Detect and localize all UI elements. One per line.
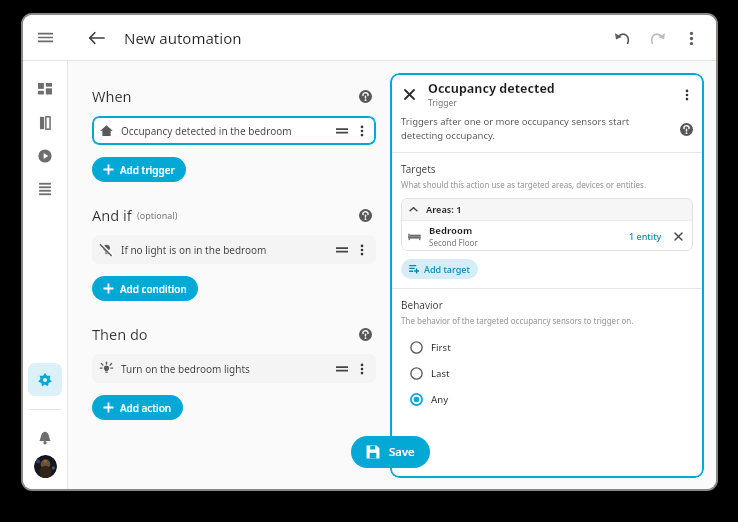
button[interactable]: Redo — [640, 21, 674, 55]
staticText: And if — [92, 205, 132, 225]
staticText: Behavior — [401, 298, 443, 312]
staticText: Trigger — [428, 97, 457, 109]
button[interactable]: Areas: 1 — [401, 198, 693, 220]
staticText: When — [92, 86, 132, 106]
button[interactable]: Save — [351, 436, 430, 468]
staticText: Bedroom — [429, 224, 473, 237]
button[interactable]: Add action — [92, 395, 183, 420]
button[interactable]: Trigger options — [674, 82, 699, 107]
button[interactable]: Back — [81, 23, 111, 53]
staticText: Add action — [120, 401, 172, 415]
button[interactable]: Overview — [28, 73, 62, 106]
staticText: Triggers after one or more occupancy sen… — [401, 115, 653, 142]
button[interactable]: Settings — [28, 363, 62, 396]
button[interactable]: Map — [28, 106, 62, 139]
staticText: Add target — [424, 263, 470, 275]
staticText: Areas: 1 — [426, 203, 462, 215]
staticText: Last — [431, 367, 450, 380]
staticText: New automation — [124, 28, 242, 48]
button[interactable]: Help about Then do — [354, 323, 376, 345]
button[interactable]: Row options — [352, 121, 372, 141]
staticText: Save — [389, 444, 415, 460]
button[interactable]: Undo — [606, 21, 640, 55]
button[interactable]: Add target — [401, 259, 478, 279]
button[interactable]: User profile — [34, 455, 57, 478]
button[interactable]: Turn on the bedroom lights — [92, 354, 376, 383]
staticText: What should this action use as targeted … — [401, 179, 647, 190]
staticText: Add condition — [120, 282, 187, 296]
staticText: Occupancy detected in the bedroom — [121, 124, 292, 138]
button[interactable]: Row options — [352, 359, 372, 379]
staticText: Add trigger — [120, 163, 175, 177]
button[interactable]: Close — [397, 82, 422, 107]
staticText: Second Floor — [429, 237, 478, 248]
button[interactable]: Menu — [23, 15, 67, 60]
button[interactable]: Any — [401, 386, 704, 412]
staticText: Any — [431, 393, 449, 406]
button[interactable]: Row options — [352, 240, 372, 260]
staticText: Turn on the bedroom lights — [121, 362, 250, 376]
button[interactable]: If no light is on in the bedroom — [92, 235, 376, 264]
button[interactable]: Logbook — [28, 172, 62, 205]
button[interactable]: Reorder — [332, 359, 352, 379]
button[interactable]: Help about And if — [354, 204, 376, 226]
button[interactable]: History — [28, 139, 62, 172]
staticText: (optional) — [137, 209, 178, 221]
button[interactable]: Notifications — [28, 421, 62, 454]
staticText: First — [431, 341, 451, 354]
staticText: Then do — [92, 324, 148, 344]
button[interactable]: Last — [401, 360, 704, 386]
staticText: Targets — [401, 162, 436, 176]
staticText: Occupancy detected — [428, 80, 555, 97]
button[interactable]: Help about When — [354, 85, 376, 107]
staticText: The behavior of the targeted occupancy s… — [401, 315, 634, 326]
button[interactable]: First — [401, 334, 704, 360]
button[interactable]: Reorder — [332, 121, 352, 141]
button[interactable]: 1 entity — [626, 227, 665, 245]
button[interactable]: Help about trigger — [675, 118, 697, 140]
button[interactable]: More options — [674, 21, 708, 55]
button[interactable]: Add condition — [92, 276, 198, 301]
button[interactable]: Reorder — [332, 240, 352, 260]
button[interactable]: Occupancy detected in the bedroom — [92, 116, 376, 145]
button[interactable]: Bedroom — [401, 221, 693, 251]
button[interactable]: Remove Bedroom — [669, 227, 688, 246]
staticText: If no light is on in the bedroom — [121, 243, 267, 257]
button[interactable]: Add trigger — [92, 157, 186, 182]
staticText: 1 entity — [629, 230, 662, 242]
